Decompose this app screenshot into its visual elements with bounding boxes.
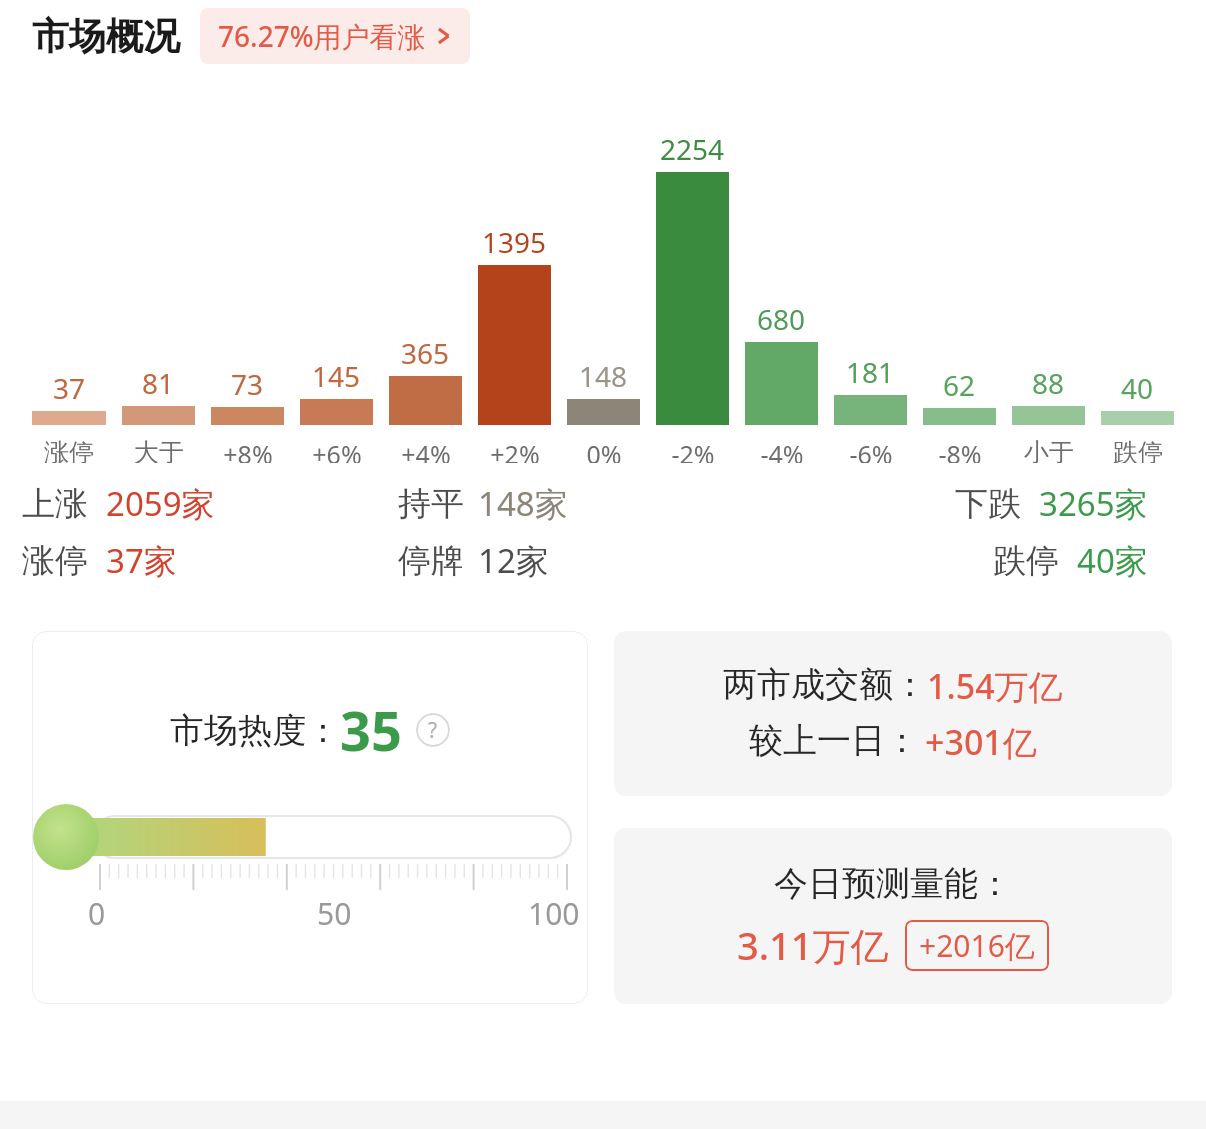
staticText: 88 <box>1032 364 1065 402</box>
staticText: -6% <box>849 437 893 463</box>
staticText: -8% <box>938 437 982 463</box>
staticText: 跌停 <box>1113 437 1163 463</box>
staticText: 148家 <box>478 481 568 526</box>
staticText: +2% <box>490 437 540 463</box>
staticText: ? <box>428 716 438 745</box>
staticText: 37 <box>53 369 86 407</box>
staticText: 今日预测量能： <box>774 862 1012 905</box>
staticText: 涨停 <box>44 437 94 463</box>
staticText: 较上一日： <box>749 719 919 762</box>
staticText: 12家 <box>478 538 549 583</box>
staticText: 市场热度： <box>170 709 340 752</box>
staticText: 181 <box>846 353 895 391</box>
button[interactable]: 说明 <box>416 713 450 747</box>
staticText: 100 <box>528 893 580 934</box>
staticText: 持平 <box>398 483 464 525</box>
staticText: 50 <box>317 893 352 934</box>
staticText: 2059家 <box>106 481 215 526</box>
staticText: -4% <box>760 437 804 463</box>
staticText: 两市成交额： <box>723 663 927 706</box>
staticText: -2% <box>671 437 715 463</box>
staticText: 停牌 <box>398 540 464 582</box>
staticText: 1.54万亿 <box>927 663 1063 709</box>
button[interactable]: 今日预测量能： <box>614 828 1172 1004</box>
staticText: 下跌 <box>955 483 1021 525</box>
staticText: 2254 <box>660 130 725 168</box>
staticText: 0 <box>88 893 106 934</box>
staticText: 40 <box>1121 369 1154 407</box>
staticText: +6% <box>312 437 362 463</box>
staticText: 680 <box>757 300 806 338</box>
staticText: +301亿 <box>925 719 1037 765</box>
button[interactable]: 两市成交额： <box>614 631 1172 796</box>
staticText: 上涨 <box>22 483 88 525</box>
staticText: 73 <box>231 365 264 403</box>
staticText: +2016亿 <box>919 925 1035 966</box>
staticText: 1395 <box>482 223 547 261</box>
staticText: 76.27%用户看涨 <box>218 17 426 55</box>
staticText: 148 <box>579 357 628 395</box>
button[interactable]: 76.27%用户看涨 <box>200 8 470 64</box>
staticText: 跌停 <box>993 540 1059 582</box>
staticText: 37家 <box>106 538 177 583</box>
staticText: +8% <box>223 437 273 463</box>
staticText: +4% <box>401 437 451 463</box>
staticText: 大于 +8% <box>134 437 184 463</box>
button[interactable]: 市场热度： <box>32 631 588 1004</box>
staticText: 涨停 <box>22 540 88 582</box>
staticText: 35 <box>340 693 402 767</box>
staticText: 62 <box>943 366 976 404</box>
staticText: 0% <box>586 437 622 463</box>
staticText: 3.11万亿 <box>737 919 889 971</box>
staticText: 市场概况 <box>32 13 180 60</box>
staticText: 145 <box>312 357 361 395</box>
staticText: 小于 -8% <box>1024 437 1074 463</box>
staticText: 365 <box>401 334 450 372</box>
staticText: 3265家 <box>1039 481 1148 526</box>
staticText: 81 <box>142 364 175 402</box>
staticText: 40家 <box>1077 538 1148 583</box>
